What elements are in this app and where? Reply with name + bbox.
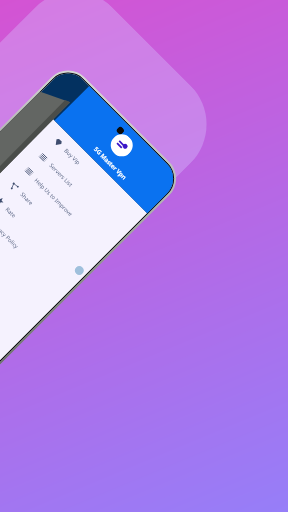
staticText: Buy Vip	[62, 147, 82, 167]
staticText: Servers List	[47, 162, 75, 189]
staticText: Privacy Policy	[0, 220, 21, 251]
staticText: Help Us to Improve	[33, 176, 74, 218]
staticText: Rate	[4, 205, 18, 220]
staticText: Share	[18, 191, 35, 208]
staticText: 5G Master Vpn	[92, 145, 128, 181]
